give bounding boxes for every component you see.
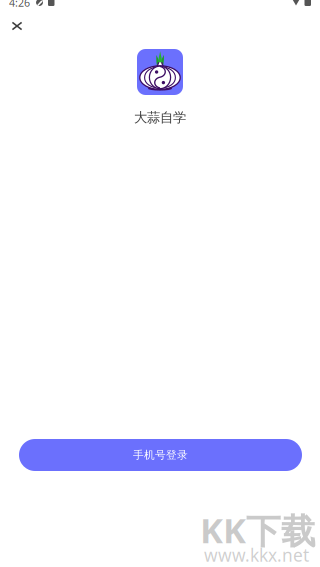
staticText: 4:26 xyxy=(9,0,30,10)
staticText: www.kkx.net xyxy=(204,543,309,566)
button[interactable]: Close xyxy=(0,9,34,43)
button[interactable]: 手机号登录 xyxy=(19,439,302,471)
staticText: 手机号登录 xyxy=(133,448,188,461)
staticText: KK下载 xyxy=(200,507,316,553)
staticText: 大蒜自学 xyxy=(134,109,186,126)
